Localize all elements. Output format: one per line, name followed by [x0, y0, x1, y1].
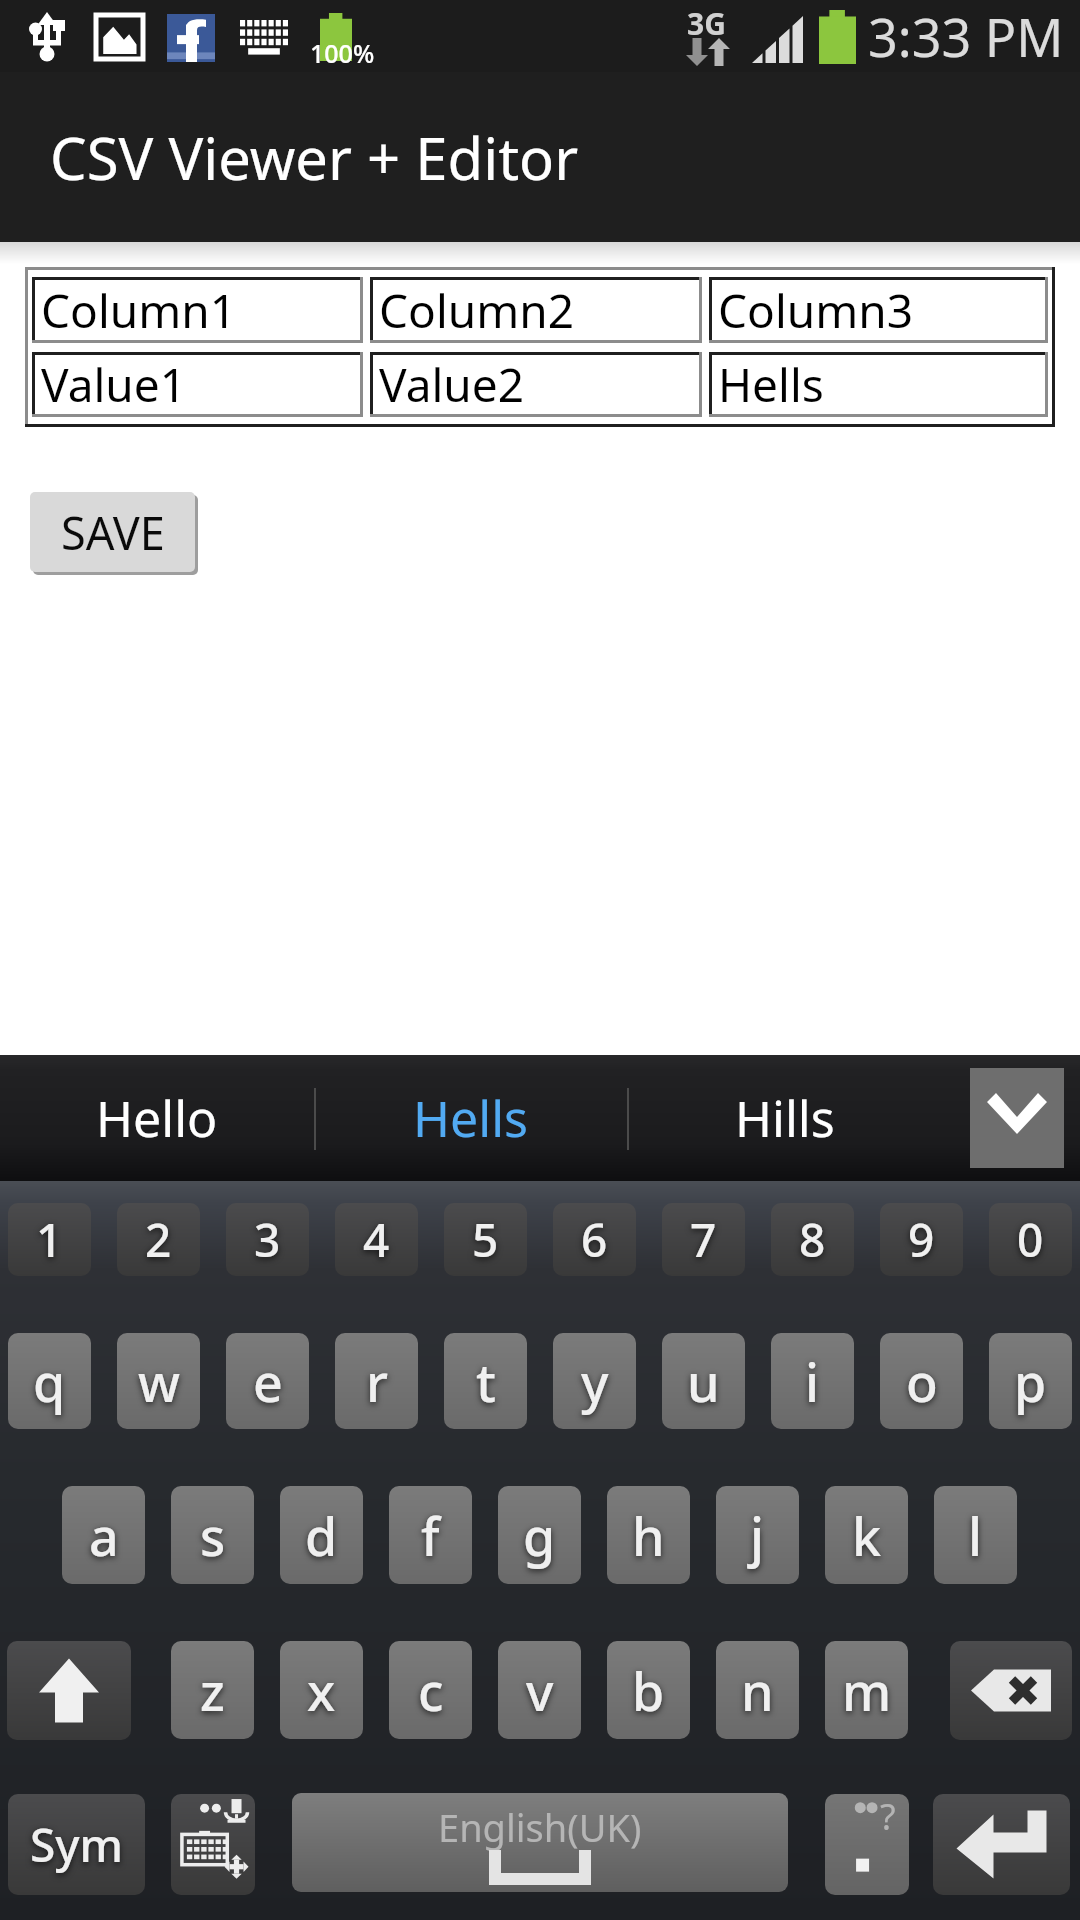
button[interactable]: w	[117, 1333, 200, 1429]
staticText: CSV Viewer + Editor	[50, 118, 579, 197]
button[interactable]: Change keyboard	[171, 1794, 255, 1895]
button[interactable]: i	[771, 1333, 854, 1429]
staticText: c	[418, 1655, 444, 1726]
staticText: f	[421, 1500, 440, 1571]
button[interactable]: y	[553, 1333, 636, 1429]
staticText: n	[741, 1655, 774, 1726]
button[interactable]: d	[280, 1486, 363, 1584]
staticText: Column3	[718, 279, 913, 342]
staticText: g	[523, 1500, 556, 1571]
button[interactable]: 0	[989, 1203, 1072, 1276]
button[interactable]: x	[280, 1641, 363, 1739]
button[interactable]: n	[716, 1641, 799, 1739]
staticText: Hells	[718, 353, 824, 416]
staticText: a	[89, 1500, 119, 1571]
staticText: 100%	[310, 36, 375, 70]
staticText: 3G	[687, 3, 726, 44]
button[interactable]: 9	[880, 1203, 963, 1276]
button[interactable]: p	[989, 1333, 1072, 1429]
staticText: Hello	[96, 1084, 218, 1152]
button[interactable]: Hells	[314, 1055, 627, 1181]
staticText: y	[581, 1346, 609, 1417]
button[interactable]: o	[880, 1333, 963, 1429]
button[interactable]: r	[335, 1333, 418, 1429]
button[interactable]: k	[825, 1486, 908, 1584]
button[interactable]: q	[8, 1333, 91, 1429]
button[interactable]: Sym	[8, 1794, 145, 1895]
staticText: 4	[363, 1208, 390, 1271]
button[interactable]: j	[716, 1486, 799, 1584]
button[interactable]: 3	[226, 1203, 309, 1276]
staticText: 3:33 PM	[868, 1, 1064, 72]
staticText: Column2	[379, 279, 574, 342]
staticText: o	[906, 1346, 938, 1417]
button[interactable]: Value1	[32, 352, 363, 417]
staticText: ?	[880, 1794, 896, 1841]
button[interactable]: Column2	[370, 277, 702, 343]
button[interactable]: Column1	[32, 277, 363, 343]
button[interactable]: Hills	[627, 1055, 943, 1181]
button[interactable]: Hello	[0, 1055, 314, 1181]
staticText: z	[200, 1655, 225, 1726]
button[interactable]: s	[171, 1486, 254, 1584]
staticText: Column1	[41, 279, 236, 342]
staticText: English(UK)	[438, 1801, 642, 1853]
button[interactable]: b	[607, 1641, 690, 1739]
staticText: w	[138, 1346, 180, 1417]
button[interactable]: v	[498, 1641, 581, 1739]
staticText: t	[476, 1346, 496, 1417]
button[interactable]: 4	[335, 1203, 418, 1276]
staticText: 7	[690, 1208, 717, 1271]
staticText: m	[842, 1655, 892, 1726]
button[interactable]: Period	[825, 1794, 909, 1895]
button[interactable]: 5	[444, 1203, 527, 1276]
button[interactable]: SAVE	[30, 492, 195, 572]
staticText: l	[968, 1500, 983, 1571]
button[interactable]: 2	[117, 1203, 200, 1276]
staticText: v	[526, 1655, 554, 1726]
staticText: Hills	[735, 1084, 835, 1152]
staticText: d	[305, 1500, 338, 1571]
staticText: j	[750, 1500, 765, 1571]
staticText: 0	[1017, 1208, 1044, 1271]
button[interactable]: l	[934, 1486, 1017, 1584]
button[interactable]: 8	[771, 1203, 854, 1276]
button[interactable]: e	[226, 1333, 309, 1429]
button[interactable]: h	[607, 1486, 690, 1584]
button[interactable]: Shift	[7, 1641, 131, 1740]
button[interactable]: c	[389, 1641, 472, 1739]
staticText: 6	[581, 1208, 608, 1271]
button[interactable]: f	[389, 1486, 472, 1584]
staticText: Sym	[30, 1813, 124, 1876]
staticText: 1	[36, 1208, 63, 1271]
staticText: q	[33, 1346, 66, 1417]
button[interactable]: 7	[662, 1203, 745, 1276]
staticText: SAVE	[61, 502, 165, 563]
staticText: h	[632, 1500, 665, 1571]
button[interactable]: 6	[553, 1203, 636, 1276]
staticText: b	[632, 1655, 665, 1726]
staticText: r	[366, 1346, 388, 1417]
button[interactable]: Enter	[933, 1794, 1070, 1895]
button[interactable]: Hells	[709, 352, 1048, 417]
button[interactable]: Space	[292, 1793, 788, 1892]
button[interactable]: a	[62, 1486, 145, 1584]
button[interactable]: 1	[8, 1203, 91, 1276]
staticText: Value1	[41, 353, 187, 416]
staticText: 3	[254, 1208, 281, 1271]
staticText: s	[200, 1500, 226, 1571]
button[interactable]: g	[498, 1486, 581, 1584]
button[interactable]: z	[171, 1641, 254, 1739]
staticText: Value2	[379, 353, 525, 416]
button[interactable]: u	[662, 1333, 745, 1429]
staticText: k	[852, 1500, 882, 1571]
button[interactable]: t	[444, 1333, 527, 1429]
staticText: 2	[145, 1208, 172, 1271]
button[interactable]: Hide suggestions	[970, 1068, 1064, 1168]
button[interactable]: Value2	[370, 352, 702, 417]
button[interactable]: Column3	[709, 277, 1048, 343]
staticText: 9	[908, 1208, 935, 1271]
button[interactable]: m	[825, 1641, 908, 1739]
staticText: e	[253, 1346, 283, 1417]
button[interactable]: Backspace	[950, 1641, 1072, 1740]
